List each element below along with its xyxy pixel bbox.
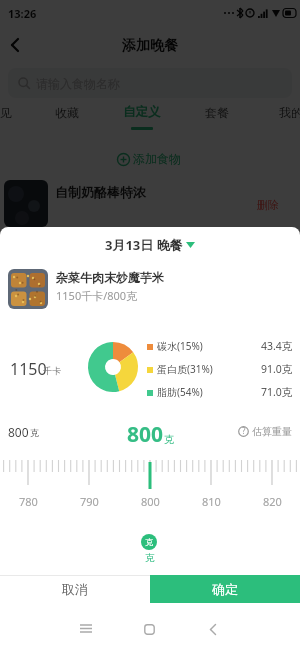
staticText: 800 <box>127 420 164 449</box>
button[interactable]: 取消 <box>0 575 150 603</box>
staticText: 删除 <box>257 198 279 212</box>
button[interactable]: 确定 <box>150 575 300 603</box>
staticText: 添加食物 <box>133 151 181 166</box>
staticText: 我的 <box>279 105 300 120</box>
staticText: 自制奶酪棒特浓 <box>55 184 146 200</box>
staticText: 蛋白质(31%) <box>157 362 213 376</box>
staticText: 收藏 <box>55 105 79 120</box>
staticText: 克 <box>145 552 155 564</box>
staticText: 确定 <box>212 581 238 597</box>
staticText: 13:26 <box>8 6 37 21</box>
staticText: 71.0克 <box>261 385 293 399</box>
staticText: ? <box>242 425 246 436</box>
staticText: 800 <box>141 494 160 509</box>
staticText: 1150 <box>10 358 47 380</box>
button[interactable]: 3月13日 晚餐 <box>0 236 300 254</box>
staticText: 790 <box>80 494 99 509</box>
staticText: 克 <box>30 427 39 438</box>
staticText: 43.4克 <box>261 339 293 353</box>
staticText: 取消 <box>62 581 88 597</box>
staticText: 克 <box>145 537 153 547</box>
staticText: 1150千卡/800克 <box>56 288 138 303</box>
staticText: 自定义 <box>123 104 161 120</box>
staticText: 91.0克 <box>261 362 293 376</box>
button[interactable]: 添加食物 <box>133 151 181 166</box>
staticText: 千卡 <box>43 365 61 376</box>
staticText: 820 <box>263 494 282 509</box>
staticText: 800 <box>8 424 29 440</box>
staticText: 添加晚餐 <box>122 37 178 55</box>
staticText: 碳水(15%) <box>157 339 203 353</box>
staticText: 780 <box>19 494 38 509</box>
staticText: 套餐 <box>205 105 229 120</box>
staticText: 见 <box>0 105 12 120</box>
staticText: 克 <box>164 433 174 446</box>
staticText: 请输入食物名称 <box>36 76 120 91</box>
button[interactable]: 克 <box>141 534 157 550</box>
staticText: 3月13日 晚餐 <box>105 236 183 254</box>
staticText: 810 <box>202 494 221 509</box>
staticText: 杂菜牛肉末炒魔芋米 <box>56 270 164 285</box>
staticText: 估算重量 <box>252 425 292 438</box>
staticText: 脂肪(54%) <box>157 385 203 399</box>
